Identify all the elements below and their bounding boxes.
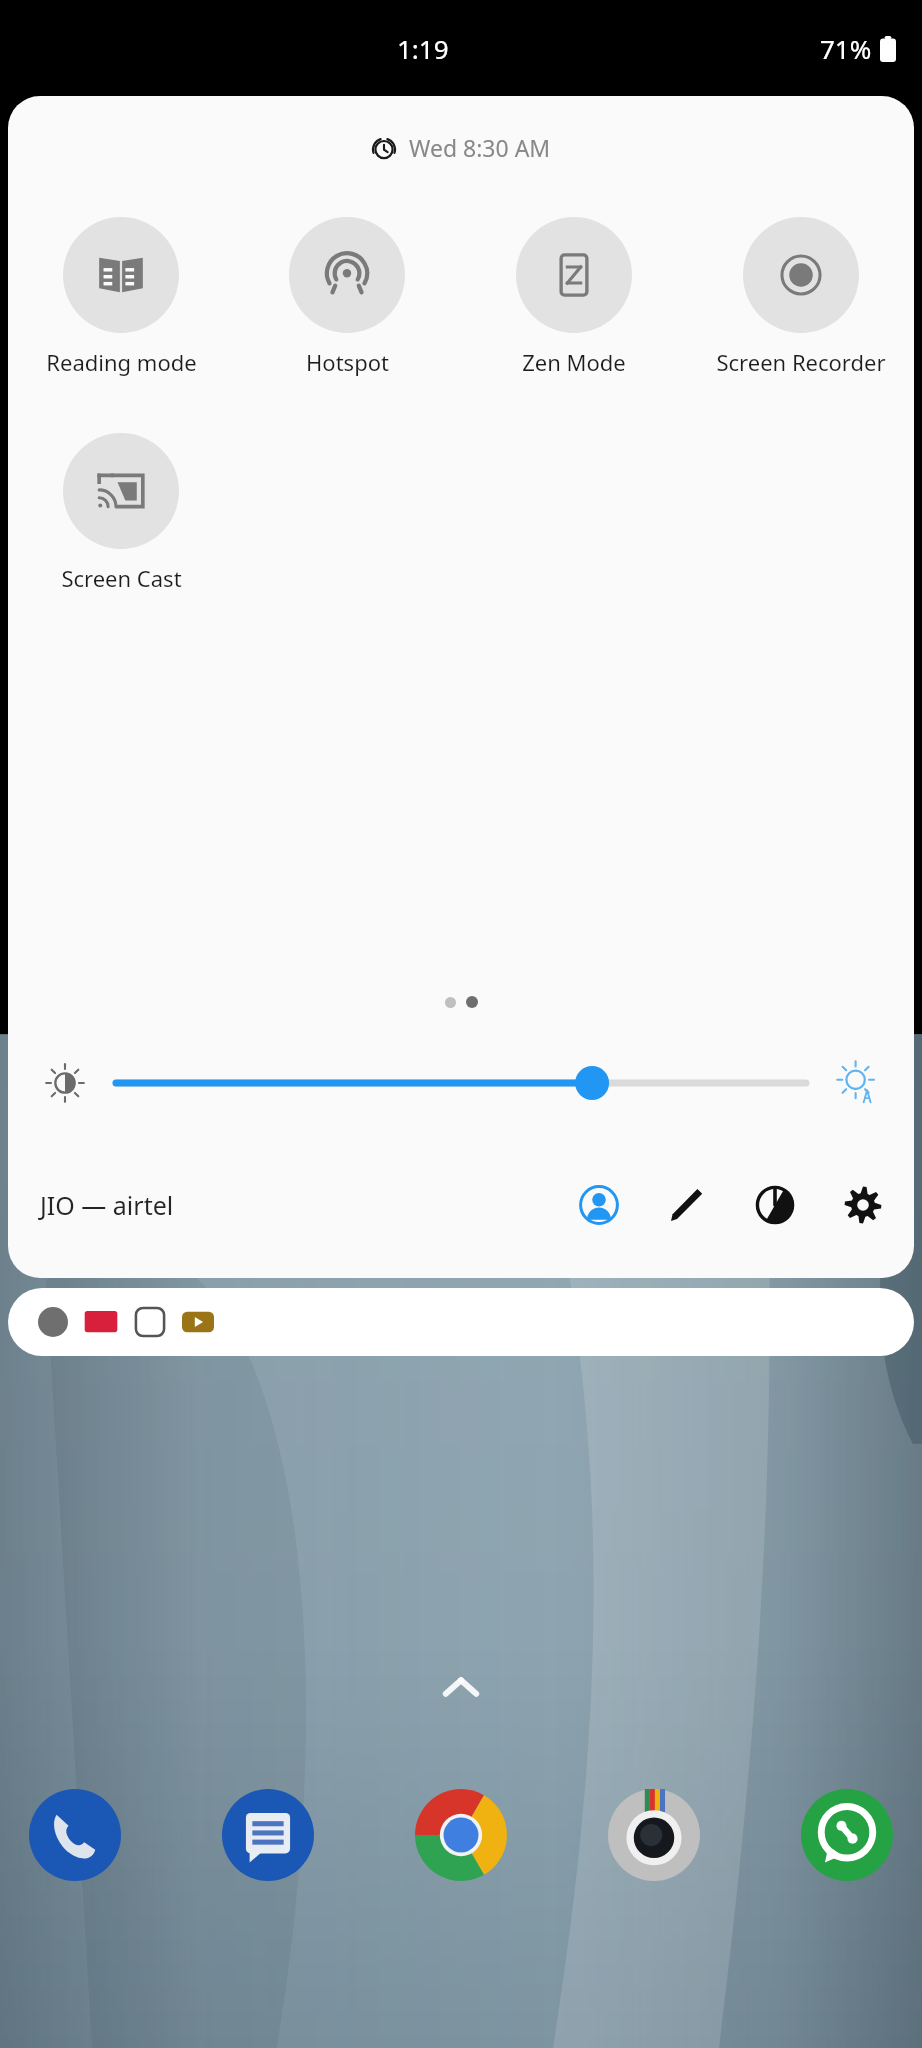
button[interactable]: Settings xyxy=(832,1174,894,1236)
button[interactable] xyxy=(8,1288,914,1356)
staticText: Zen Mode xyxy=(522,347,626,377)
button[interactable]: Camera xyxy=(607,1788,701,1882)
button[interactable]: Zen Mode xyxy=(474,215,674,379)
button[interactable]: WhatsApp xyxy=(800,1788,894,1882)
button[interactable]: Screen Cast xyxy=(21,431,221,595)
button[interactable]: Messages xyxy=(221,1788,315,1882)
button[interactable]: Wed 8:30 AM xyxy=(8,132,914,163)
staticText: Screen Recorder xyxy=(716,347,886,377)
staticText: 1:19 xyxy=(397,31,449,66)
button[interactable]: Screen Recorder xyxy=(701,215,901,379)
staticText: Hotspot xyxy=(306,347,389,377)
button[interactable]: Hotspot xyxy=(247,215,447,379)
staticText: 71% xyxy=(820,31,872,66)
button[interactable]: JIO — airtel xyxy=(38,1180,176,1230)
button[interactable]: Phone xyxy=(28,1788,122,1882)
button[interactable]: Reading mode xyxy=(21,215,221,379)
button[interactable] xyxy=(116,1053,806,1113)
button[interactable]: Contrast xyxy=(26,1044,104,1122)
button[interactable]: User xyxy=(568,1174,630,1236)
staticText: Wed 8:30 AM xyxy=(409,132,551,163)
button[interactable]: Power xyxy=(744,1174,806,1236)
button[interactable]: Auto brightness xyxy=(818,1044,896,1122)
button[interactable]: Edit tiles xyxy=(656,1174,718,1236)
staticText: Reading mode xyxy=(46,347,197,377)
staticText: JIO — airtel xyxy=(40,1188,174,1222)
button[interactable]: Chrome xyxy=(414,1788,508,1882)
staticText: Screen Cast xyxy=(61,563,182,593)
